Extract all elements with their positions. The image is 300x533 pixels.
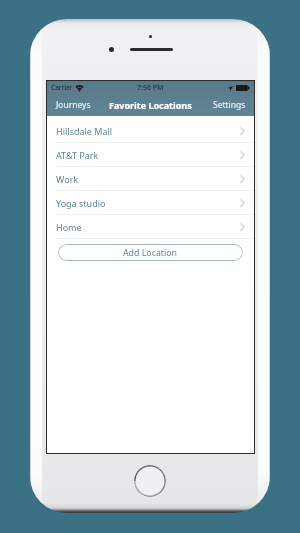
button[interactable]: Journeys <box>47 99 97 111</box>
staticText: Settings <box>213 99 246 111</box>
staticText: Work <box>56 173 79 185</box>
button[interactable]: AT&T Park <box>47 143 254 167</box>
staticText: AT&T Park <box>56 149 99 161</box>
staticText: Favorite Locations <box>109 99 192 111</box>
staticText: Carrier <box>51 83 73 92</box>
button[interactable]: Yoga studio <box>47 191 254 215</box>
staticText: Yoga studio <box>56 197 106 209</box>
staticText: Home <box>56 221 82 233</box>
button[interactable]: Home <box>134 465 166 497</box>
staticText: Add Location <box>123 247 178 259</box>
button[interactable]: Home <box>47 215 254 239</box>
button[interactable]: Hillsdale Mall <box>47 119 254 143</box>
staticText: 7:56 PM <box>137 83 164 93</box>
button[interactable]: Work <box>47 167 254 191</box>
button[interactable]: Add Location <box>58 244 243 261</box>
button[interactable]: Settings <box>207 99 254 111</box>
staticText: Journeys <box>56 99 91 111</box>
staticText: Hillsdale Mall <box>56 125 113 137</box>
